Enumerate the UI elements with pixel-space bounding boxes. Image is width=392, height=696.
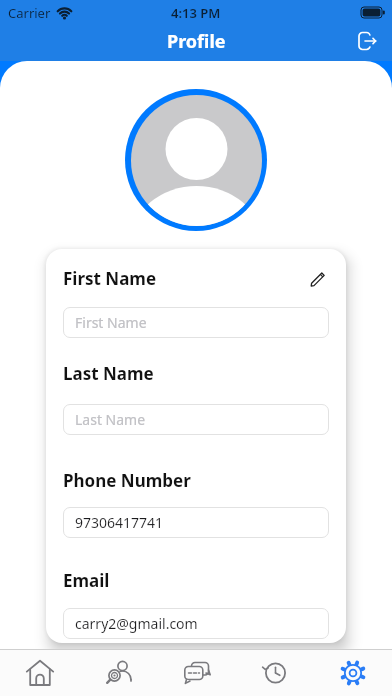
button[interactable] xyxy=(352,26,382,56)
staticText: First Name xyxy=(75,313,147,332)
button[interactable]: First Name xyxy=(63,307,329,338)
staticText: Carrier xyxy=(8,4,51,22)
button[interactable] xyxy=(307,268,329,290)
button[interactable] xyxy=(79,650,158,696)
staticText: Email xyxy=(63,569,110,592)
button[interactable]: Last Name xyxy=(63,404,329,435)
button[interactable] xyxy=(158,650,236,696)
staticText: Last Name xyxy=(63,362,154,385)
staticText: 4:13 PM xyxy=(171,4,221,22)
button[interactable] xyxy=(0,650,79,696)
staticText: carry2@gmail.com xyxy=(75,614,198,633)
staticText: First Name xyxy=(63,267,157,290)
button[interactable] xyxy=(314,650,392,696)
button[interactable] xyxy=(236,650,314,696)
staticText: Phone Number xyxy=(63,469,191,492)
staticText: 97306417741 xyxy=(75,513,164,532)
button[interactable]: carry2@gmail.com xyxy=(63,608,329,639)
staticText: Profile xyxy=(167,29,226,54)
button[interactable]: 97306417741 xyxy=(63,507,329,538)
staticText: Last Name xyxy=(75,410,146,429)
